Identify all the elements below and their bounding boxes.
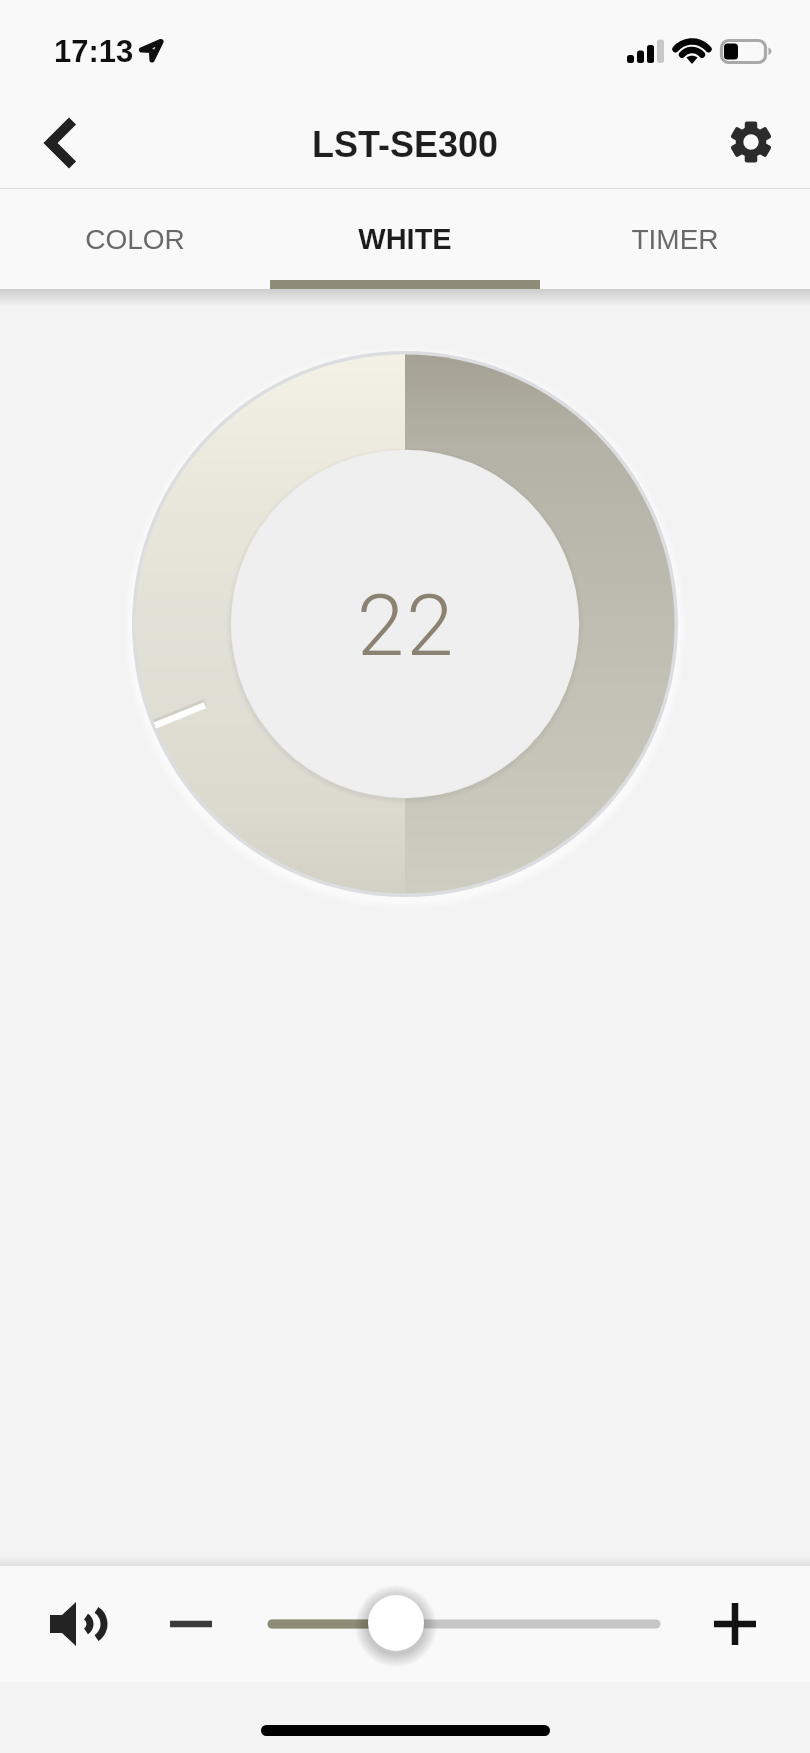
button[interactable]: Increase brightness — [695, 1566, 785, 1682]
button[interactable]: Back — [0, 96, 100, 189]
staticText: COLOR — [85, 224, 185, 255]
button[interactable]: Mute — [0, 1566, 120, 1682]
button[interactable]: Settings — [710, 96, 810, 189]
button[interactable]: Decrease brightness — [150, 1566, 235, 1682]
button[interactable]: COLOR — [0, 189, 270, 289]
button[interactable]: WHITE — [270, 189, 540, 289]
staticText: TIMER — [631, 224, 719, 255]
staticText: 17:13 — [54, 34, 134, 69]
button[interactable]: Colour temperature dial, 22 — [125, 344, 685, 904]
staticText: LST-SE300 — [312, 124, 499, 164]
staticText: 22 — [357, 576, 456, 676]
button[interactable]: TIMER — [540, 189, 810, 289]
staticText: WHITE — [358, 223, 452, 255]
